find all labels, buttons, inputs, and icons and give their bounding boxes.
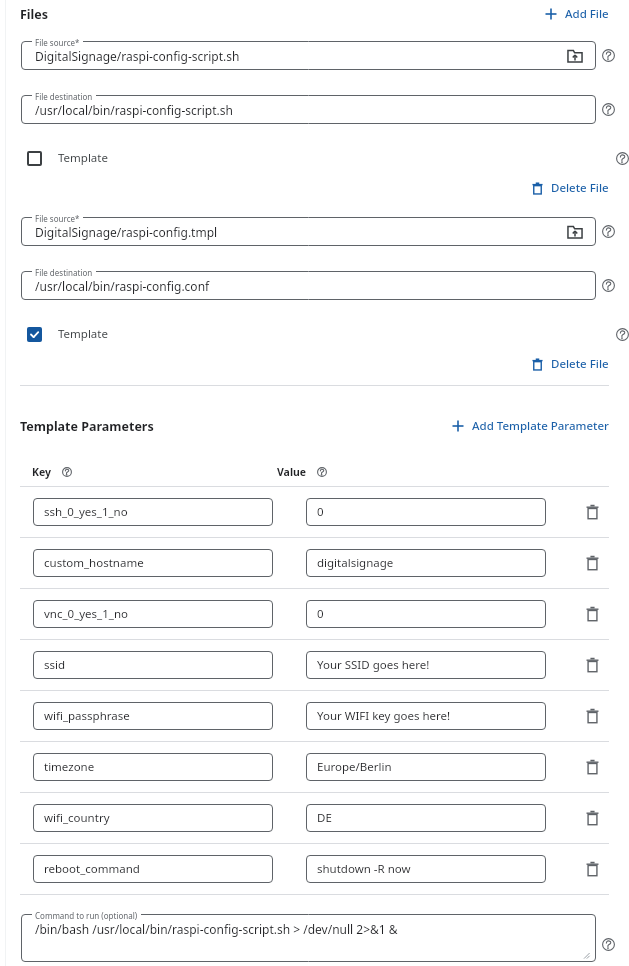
button[interactable]: timezone [33, 753, 273, 781]
button[interactable]: Delete File [526, 176, 615, 200]
staticText: File source* [35, 37, 80, 48]
button[interactable]: Help [611, 323, 629, 345]
button[interactable]: wifi_country [33, 804, 273, 832]
staticText: Your WIFI key goes here! [317, 708, 451, 724]
button[interactable]: reboot_command [33, 855, 273, 883]
button[interactable]: 0 [306, 498, 546, 526]
staticText: /bin/bash /usr/local/bin/raspi-config-sc… [35, 921, 398, 937]
button[interactable]: custom_hostname [33, 549, 273, 577]
staticText: Add File [565, 6, 609, 22]
button[interactable]: Help [597, 44, 619, 66]
button[interactable] [21, 217, 596, 246]
button[interactable]: Add Template Parameter [446, 414, 615, 438]
staticText: Your SSID goes here! [317, 657, 430, 673]
button[interactable]: digitalsignage [306, 549, 546, 577]
button[interactable]: vnc_0_yes_1_no [33, 600, 273, 628]
staticText: File destination [35, 267, 93, 278]
button[interactable]: Delete parameter custom_hostname [575, 546, 609, 580]
button[interactable]: Help [611, 147, 629, 169]
button[interactable] [21, 95, 596, 124]
staticText: DigitalSignage/raspi-config.tmpl [35, 224, 218, 240]
button[interactable]: Help [597, 98, 619, 120]
button[interactable]: ssid [33, 651, 273, 679]
staticText: ssid [44, 657, 66, 673]
staticText: File source* [35, 213, 80, 224]
staticText: 0 [317, 504, 324, 520]
staticText: DE [317, 810, 332, 826]
button[interactable]: Your WIFI key goes here! [306, 702, 546, 730]
staticText: shutdown -R now [317, 861, 411, 877]
staticText: Add Template Parameter [472, 418, 609, 434]
staticText: Europe/Berlin [317, 759, 392, 775]
button[interactable]: Delete parameter wifi_passphrase [575, 699, 609, 733]
button[interactable]: Delete File [526, 352, 615, 376]
staticText: Template [58, 150, 108, 166]
staticText: Delete File [551, 180, 609, 196]
staticText: wifi_passphrase [44, 708, 130, 724]
button[interactable]: Your SSID goes here! [306, 651, 546, 679]
staticText: reboot_command [44, 861, 140, 877]
button[interactable]: Delete parameter ssid [575, 648, 609, 682]
staticText: digitalsignage [317, 555, 394, 571]
staticText: Command to run (optional) [35, 910, 138, 921]
staticText: Key [32, 465, 52, 479]
button[interactable]: Europe/Berlin [306, 753, 546, 781]
button[interactable]: Help [56, 463, 78, 481]
button[interactable]: Add File [539, 2, 615, 26]
staticText: custom_hostname [44, 555, 144, 571]
button[interactable]: Browse file [564, 45, 586, 67]
button[interactable]: 0 [306, 600, 546, 628]
button[interactable] [21, 271, 596, 300]
staticText: /usr/local/bin/raspi-config.conf [35, 278, 210, 294]
staticText: Template Parameters [20, 418, 154, 435]
button[interactable]: Template [0, 146, 108, 170]
button[interactable]: Delete parameter timezone [575, 750, 609, 784]
staticText: vnc_0_yes_1_no [44, 606, 128, 622]
staticText: DigitalSignage/raspi-config-script.sh [35, 48, 240, 64]
staticText: timezone [44, 759, 95, 775]
button[interactable] [21, 41, 596, 70]
staticText: /usr/local/bin/raspi-config-script.sh [35, 102, 233, 118]
staticText: Template [58, 326, 108, 342]
staticText: wifi_country [44, 810, 110, 826]
button[interactable]: Delete parameter reboot_command [575, 852, 609, 886]
button[interactable]: Help [597, 274, 619, 296]
button[interactable]: Help [597, 220, 619, 242]
staticText: ssh_0_yes_1_no [44, 504, 128, 520]
button[interactable]: Help [311, 463, 333, 481]
staticText: Delete File [551, 356, 609, 372]
button[interactable]: Delete parameter ssh_0_yes_1_no [575, 495, 609, 529]
button[interactable]: shutdown -R now [306, 855, 546, 883]
staticText: Value [277, 465, 307, 479]
button[interactable]: DE [306, 804, 546, 832]
staticText: 0 [317, 606, 324, 622]
staticText: File destination [35, 91, 93, 102]
button[interactable]: Browse file [564, 221, 586, 243]
staticText: Files [20, 6, 49, 23]
button[interactable]: Delete parameter vnc_0_yes_1_no [575, 597, 609, 631]
button[interactable]: wifi_passphrase [33, 702, 273, 730]
button[interactable]: Help [597, 933, 619, 955]
button[interactable] [21, 914, 596, 962]
button[interactable]: Delete parameter wifi_country [575, 801, 609, 835]
button[interactable]: Template [0, 322, 108, 346]
button[interactable]: ssh_0_yes_1_no [33, 498, 273, 526]
